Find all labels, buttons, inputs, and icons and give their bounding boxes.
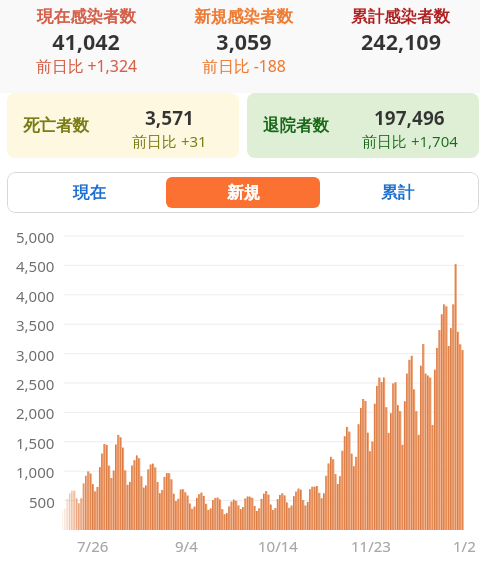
staticText: 2,500	[16, 374, 55, 392]
staticText: 累計感染者数	[351, 6, 450, 27]
staticText: 現在感染者数	[37, 6, 136, 27]
staticText: 1,000	[16, 462, 55, 480]
button[interactable]: 新規	[166, 177, 320, 208]
staticText: 242,109	[361, 27, 441, 53]
staticText: 累計	[381, 182, 414, 203]
button[interactable]: 退院者数	[247, 93, 479, 158]
staticText: 7/26	[77, 536, 109, 554]
staticText: 1/2	[453, 536, 476, 554]
staticText: 前日比 +1,704	[362, 131, 458, 151]
staticText: 4,500	[16, 256, 55, 274]
staticText: 新規感染者数	[194, 6, 293, 27]
staticText: 死亡者数	[23, 115, 89, 136]
staticText: 退院者数	[263, 115, 329, 136]
staticText: 3,059	[216, 27, 272, 53]
staticText: 3,571	[145, 105, 194, 131]
staticText: 41,042	[52, 27, 120, 53]
staticText: 9/4	[175, 536, 198, 554]
staticText: 1,500	[16, 433, 55, 451]
button[interactable]: 現在	[12, 177, 166, 208]
button[interactable]: 死亡者数	[7, 93, 239, 158]
staticText: 4,000	[16, 286, 55, 304]
staticText: 前日比 +31	[132, 131, 207, 151]
staticText: 197,496	[374, 105, 445, 131]
staticText: 500	[29, 492, 55, 510]
staticText: 前日比 +1,324	[36, 55, 137, 77]
staticText: 3,500	[16, 315, 55, 333]
staticText: 5,000	[16, 227, 55, 245]
staticText: 3,000	[16, 345, 55, 363]
staticText: 2,000	[16, 403, 55, 421]
button[interactable]: 累計	[320, 177, 474, 208]
staticText: 新規	[227, 182, 260, 203]
staticText: 前日比 -188	[202, 55, 286, 77]
staticText: 10/14	[258, 536, 298, 554]
staticText: 11/23	[351, 536, 391, 554]
staticText: 現在	[73, 182, 106, 203]
